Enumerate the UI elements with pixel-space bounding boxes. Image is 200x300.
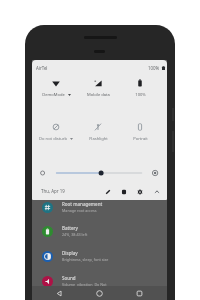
staticText: 100% [148,65,160,71]
staticText: Do not disturb [39,136,67,142]
staticText: 24%, 38:43 left [62,232,88,237]
button[interactable]: Root management [32,200,167,222]
button[interactable]: User [118,186,129,197]
staticText: Root management [62,201,103,207]
button[interactable]: 100% [120,78,160,100]
button[interactable]: Edit [102,186,113,197]
staticText: 100% [135,92,146,98]
staticText: Volume, vibration, Do Not [62,282,107,287]
button[interactable]: DemoMode [36,78,76,100]
button[interactable]: Sound [32,274,167,296]
button[interactable]: Display [32,249,167,271]
staticText: Flashlight [89,136,108,142]
staticText: DemoMode [42,92,65,98]
staticText: Sound [62,275,76,281]
button[interactable]: Do not disturb [36,122,76,144]
button[interactable]: Back [53,286,65,300]
staticText: Brightness, sleep, font size [62,257,109,262]
button[interactable]: Mobile data [78,78,118,100]
button[interactable]: Flashlight [78,122,118,144]
button[interactable]: Home [93,286,105,300]
staticText: Battery [62,225,78,231]
button[interactable]: Battery [32,224,167,246]
staticText: Display [62,250,78,256]
button[interactable]: Recents [133,286,145,300]
button[interactable]: Settings [134,186,145,197]
staticText: Mobile data [87,92,110,98]
staticText: Portrait [133,136,148,142]
staticText: Manage root access [62,208,97,213]
button[interactable]: Portrait [120,122,160,144]
button[interactable]: Collapse [151,186,162,197]
staticText: Thu, Apr 19 [41,188,65,194]
button[interactable] [32,165,167,181]
staticText: AirTel [36,65,48,71]
